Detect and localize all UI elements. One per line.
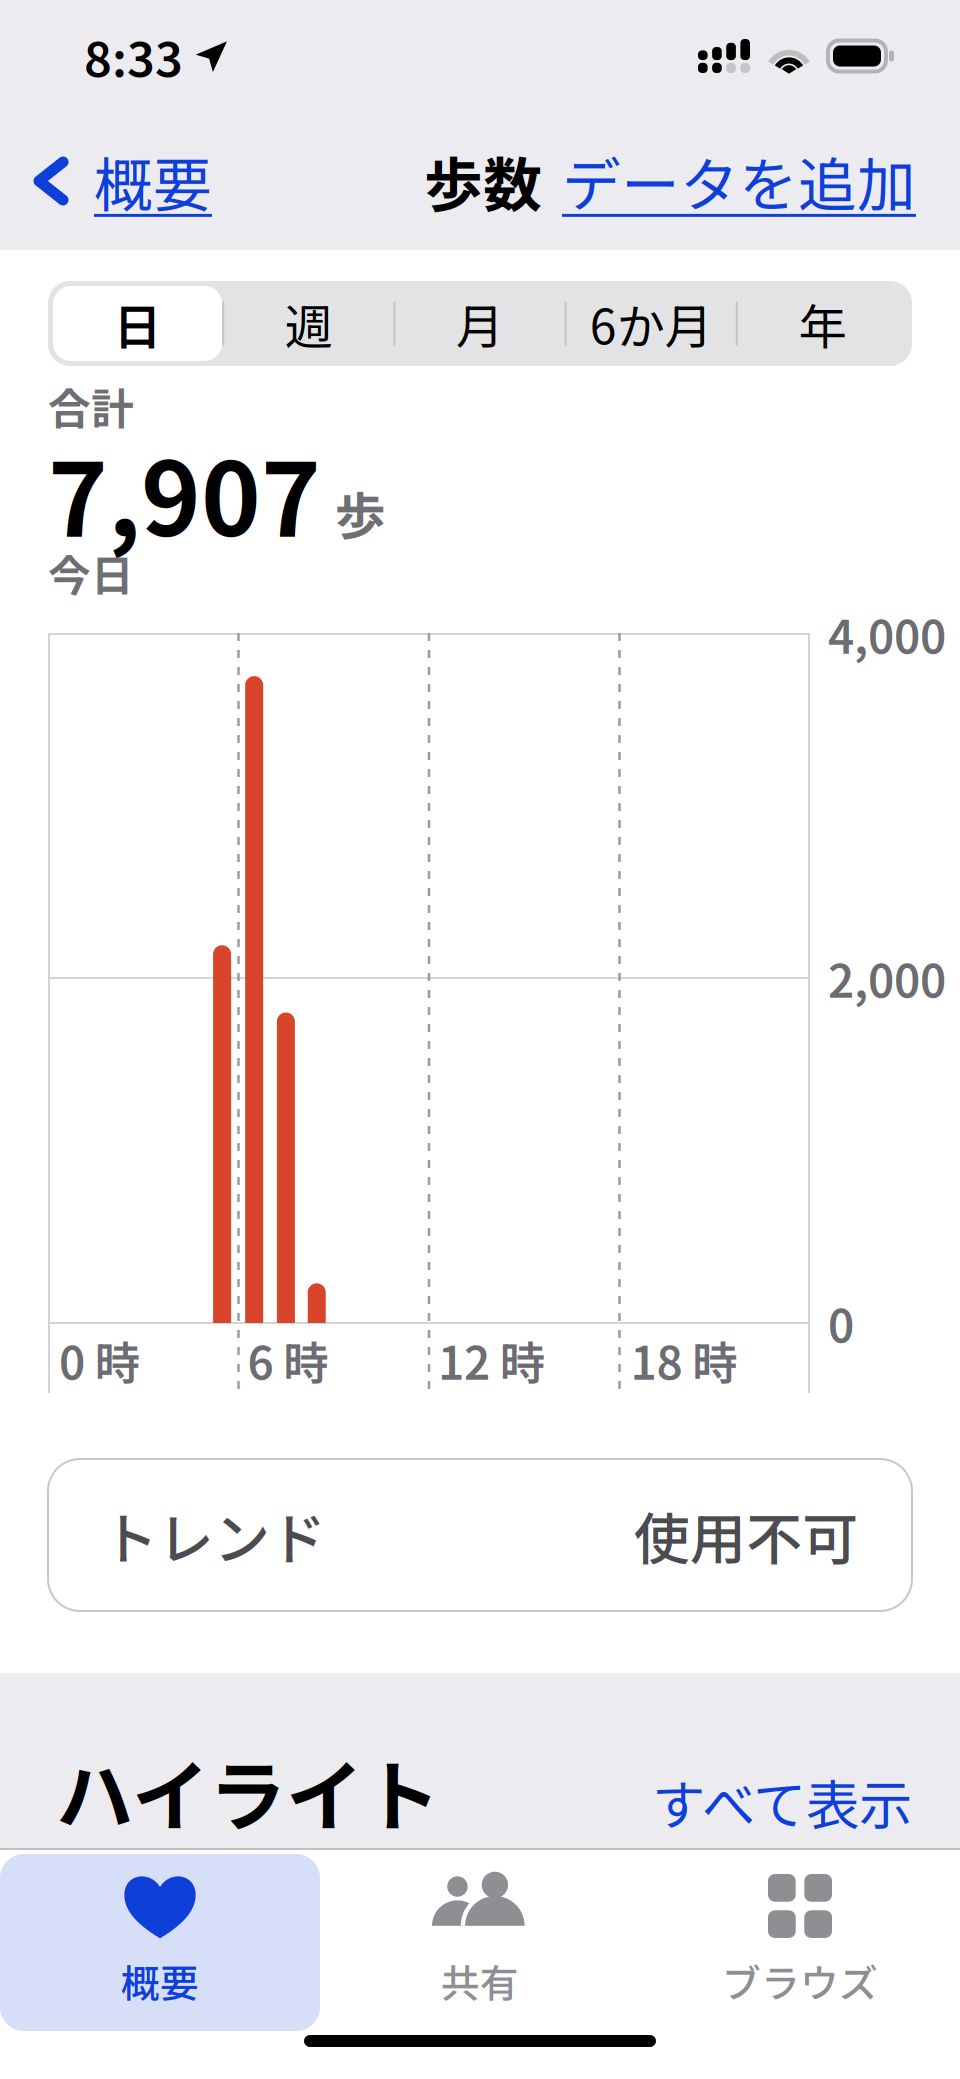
button[interactable]: 概要 [0,126,212,235]
staticText: 使用不可 [634,1494,858,1576]
button[interactable]: ブラウズ [640,1854,960,2031]
button[interactable]: 月 [395,286,565,361]
staticText: 8:33 [84,21,183,91]
staticText: 6か月 [590,289,713,358]
button[interactable]: トレンド [0,1459,960,1611]
staticText: 0 [828,1290,854,1356]
button[interactable]: すべて表示 [652,1763,912,1840]
staticText: 概要 [121,1953,199,2009]
staticText: 今日 [48,542,134,604]
staticText: 年 [798,289,846,358]
staticText: 週 [285,289,333,358]
button[interactable]: データを追加 [562,126,960,235]
staticText: ブラウズ [722,1953,878,2009]
staticText: トレンド [102,1494,326,1576]
staticText: 歩 [335,476,386,549]
staticText: 日 [114,289,162,358]
staticText: 月 [456,289,504,358]
staticText: 18 時 [630,1327,737,1393]
staticText: 共有 [441,1953,519,2009]
staticText: 6 時 [247,1327,328,1393]
staticText: 概要 [94,138,212,223]
staticText: 4,000 [828,601,946,667]
button[interactable]: 概要 [0,1854,320,2031]
button[interactable]: 6か月 [567,286,736,361]
staticText: 12 時 [438,1327,545,1393]
staticText: 合計 [48,375,134,437]
staticText: 7,907 [48,419,321,565]
staticText: ハイライト [56,1735,440,1847]
button[interactable]: 週 [224,286,393,361]
staticText: 2,000 [828,945,946,1011]
button[interactable]: 共有 [320,1854,640,2031]
button[interactable]: 日 [53,286,222,361]
staticText: 0 時 [59,1327,140,1393]
staticText: すべて表示 [652,1763,912,1840]
button[interactable]: 年 [738,286,907,361]
staticText: 歩数 [424,138,542,223]
staticText: データを追加 [562,138,916,223]
